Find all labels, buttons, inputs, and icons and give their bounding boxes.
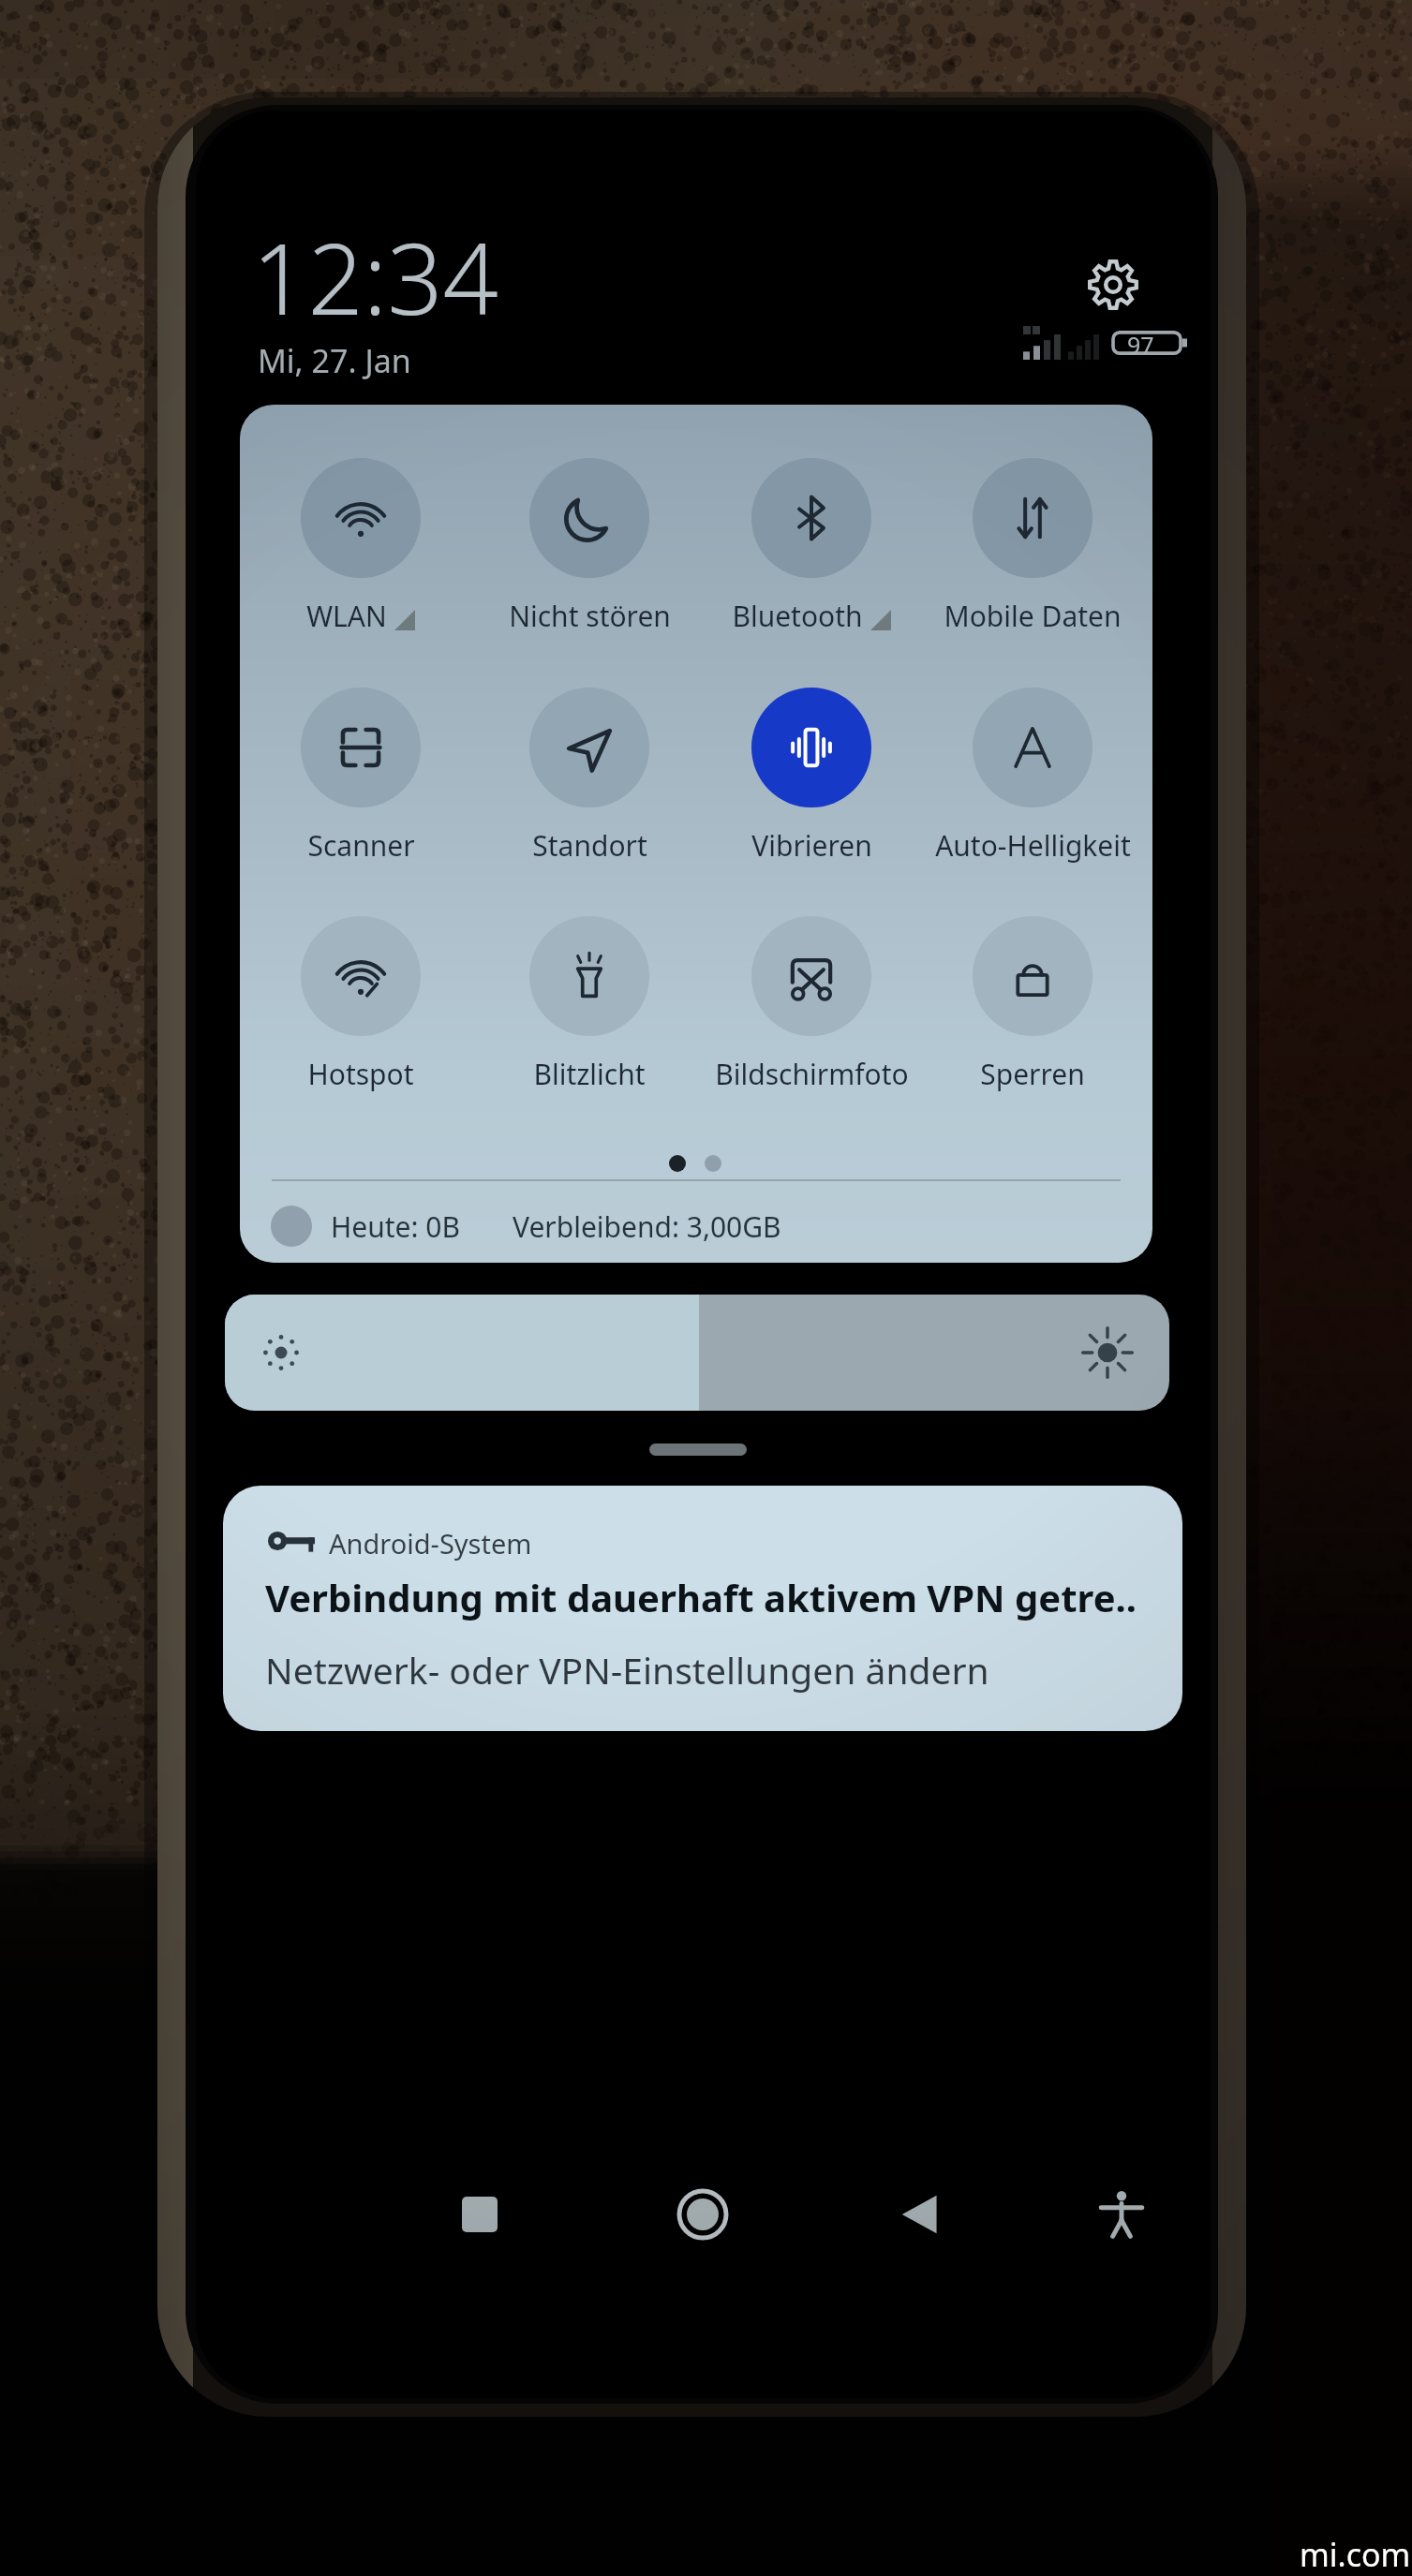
staticText: Verbindung mit dauerhaft aktivem VPN get… xyxy=(265,1572,1137,1622)
button[interactable]: Back xyxy=(874,2168,968,2261)
staticText: Blitzlicht xyxy=(533,1055,646,1093)
staticText: Standort xyxy=(532,826,647,865)
staticText: Verbleibend: 3,00GB xyxy=(513,1207,781,1246)
staticText: Mi, 27. Jan xyxy=(258,339,411,382)
button[interactable]: Mobile Daten xyxy=(922,458,1143,687)
button[interactable]: Sperren xyxy=(922,916,1143,1145)
staticText: Android-System xyxy=(329,1525,532,1562)
button[interactable]: Nicht stören xyxy=(479,458,700,687)
staticText: 12:34 xyxy=(252,211,498,344)
button[interactable]: Home xyxy=(656,2168,750,2261)
staticText: Scanner xyxy=(307,826,415,865)
staticText: Sperren xyxy=(980,1055,1085,1093)
button[interactable]: Brightness xyxy=(225,1295,1169,1411)
button[interactable]: Scanner xyxy=(250,688,471,916)
staticText: Netzwerk- oder VPN-Einstellungen ändern xyxy=(265,1645,989,1695)
staticText: 97 xyxy=(1127,329,1154,361)
button[interactable]: Bildschirmfoto xyxy=(701,916,922,1145)
button[interactable]: Blitzlicht xyxy=(479,916,700,1145)
staticText: WLAN xyxy=(306,597,387,635)
staticText: mi.com xyxy=(1300,2533,1411,2576)
staticText: Auto-Helligkeit xyxy=(935,826,1131,865)
button[interactable]: Collapse panel xyxy=(581,1416,815,1482)
staticText: Nicht stören xyxy=(509,597,671,635)
staticText: Hotspot xyxy=(307,1055,414,1093)
button[interactable]: WLAN xyxy=(250,458,471,687)
staticText: Mobile Daten xyxy=(944,597,1122,635)
staticText: Bildschirmfoto xyxy=(715,1055,909,1093)
staticText: Heute: 0B xyxy=(331,1207,460,1246)
button[interactable]: Auto-Helligkeit xyxy=(922,688,1143,916)
button[interactable]: Accessibility xyxy=(1075,2168,1168,2261)
button[interactable]: Recents xyxy=(433,2168,527,2261)
button[interactable]: Settings xyxy=(1089,260,1137,309)
staticText: Vibrieren xyxy=(751,826,872,865)
button[interactable]: Android-System xyxy=(223,1486,1182,1731)
button[interactable]: Hotspot xyxy=(250,916,471,1145)
button[interactable]: Bluetooth xyxy=(701,458,922,687)
button[interactable]: Standort xyxy=(479,688,700,916)
button[interactable]: Vibrieren xyxy=(701,688,922,916)
staticText: Bluetooth xyxy=(732,597,863,635)
